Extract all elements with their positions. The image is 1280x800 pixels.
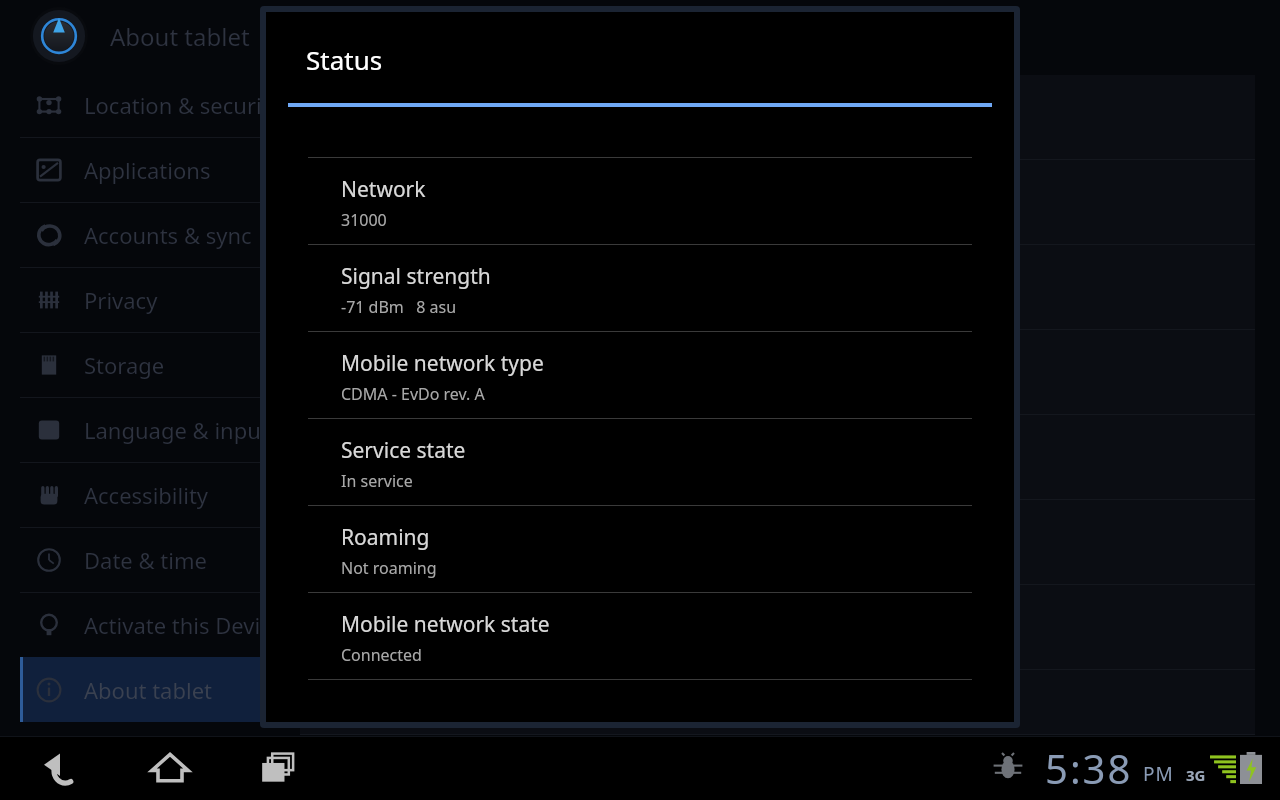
staticText: Mobile network state (341, 610, 550, 639)
staticText: CDMA - EvDo rev. A (341, 383, 485, 405)
staticText: About tablet (84, 675, 212, 705)
staticText: Not roaming (341, 557, 437, 579)
button[interactable]: Service state (308, 419, 972, 505)
staticText: Accessibility (84, 480, 209, 510)
staticText: Privacy (84, 285, 158, 315)
button[interactable]: Roaming (308, 506, 972, 592)
button[interactable]: Recent apps (246, 736, 310, 800)
staticText: Accounts & sync (84, 220, 252, 250)
staticText: PM (1143, 761, 1174, 787)
staticText: Applications (84, 155, 211, 185)
staticText: Activate this Device (84, 610, 284, 640)
staticText: Mobile network type (341, 349, 544, 378)
staticText: Location & security (84, 90, 281, 120)
staticText: About tablet (110, 20, 250, 53)
staticText: Storage (84, 350, 165, 380)
button[interactable]: Signal strength (308, 245, 972, 331)
staticText: Date & time (84, 545, 207, 575)
button[interactable]: Back (30, 736, 94, 800)
staticText: Connected (341, 644, 422, 666)
button[interactable]: Activate this Device (0, 592, 300, 657)
button[interactable]: About tablet (0, 657, 300, 722)
button[interactable]: Applications (0, 137, 300, 202)
staticText: Signal strength (341, 262, 491, 291)
staticText: Language & input (84, 415, 269, 445)
button[interactable]: Network (308, 158, 972, 244)
button[interactable]: Storage (0, 332, 300, 397)
button[interactable]: Mobile network type (308, 332, 972, 418)
staticText: 5:38 (1045, 741, 1133, 795)
button[interactable]: USB debugging (985, 745, 1031, 791)
button[interactable]: Language & input (0, 397, 300, 462)
button[interactable]: Accessibility (0, 462, 300, 527)
staticText: 31000 (341, 209, 387, 231)
button[interactable]: Location & security (0, 72, 300, 137)
staticText: Network (341, 175, 426, 204)
button[interactable]: Mobile network state (308, 593, 972, 679)
button[interactable]: Date & time (0, 527, 300, 592)
staticText: Status (306, 42, 383, 77)
button[interactable]: Privacy (0, 267, 300, 332)
staticText: In service (341, 470, 413, 492)
button[interactable]: Home (138, 736, 202, 800)
button[interactable]: Accounts & sync (0, 202, 300, 267)
staticText: Service state (341, 436, 466, 465)
staticText: 3G (1186, 765, 1206, 785)
staticText: -71 dBm 8 asu (341, 296, 457, 318)
staticText: Roaming (341, 523, 430, 552)
